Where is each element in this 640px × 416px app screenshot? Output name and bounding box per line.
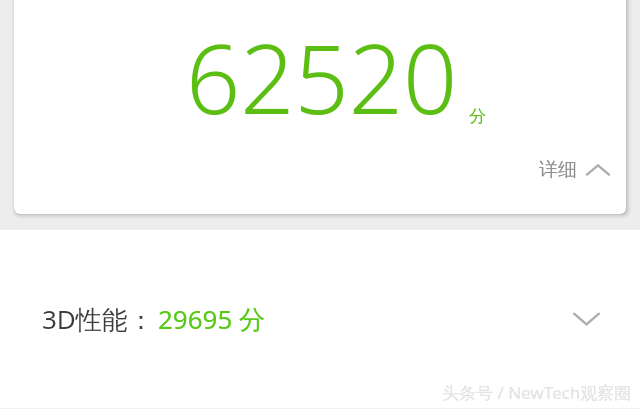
staticText: 详细: [539, 158, 577, 182]
staticText: 头条号 / NewTech观察圈: [442, 381, 632, 404]
other: Expand 3D performance: [573, 312, 600, 326]
staticText: 29695 分: [158, 301, 266, 337]
button[interactable]: 3D性能：: [0, 230, 640, 408]
button[interactable]: 详细: [533, 152, 616, 188]
staticText: 62520: [186, 12, 458, 141]
staticText: 3D性能：: [42, 301, 154, 337]
staticText: 分: [469, 106, 486, 127]
